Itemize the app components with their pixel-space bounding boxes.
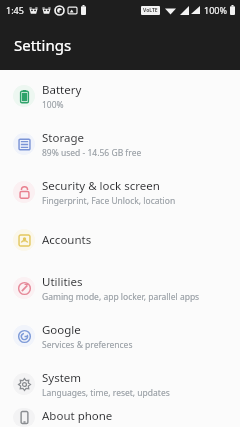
button[interactable]: Battery — [0, 72, 240, 120]
staticText: Gaming mode, app locker, parallel apps — [42, 291, 200, 303]
button[interactable]: System — [0, 360, 240, 408]
staticText: Languages, time, reset, updates — [42, 387, 170, 399]
staticText: Accounts — [42, 232, 92, 248]
staticText: About phone — [42, 408, 113, 424]
button[interactable]: About phone — [0, 408, 240, 427]
button[interactable]: Utilities — [0, 264, 240, 312]
button[interactable]: Google — [0, 312, 240, 360]
staticText: 100% — [204, 4, 227, 16]
staticText: Battery — [42, 82, 82, 98]
button[interactable]: Storage — [0, 120, 240, 168]
staticText: Fingerprint, Face Unlock, location — [42, 195, 176, 207]
staticText: Security & lock screen — [42, 178, 160, 194]
staticText: Utilities — [42, 274, 83, 290]
staticText: Google — [42, 322, 81, 338]
staticText: 100% — [42, 99, 64, 111]
button[interactable]: Security & lock screen — [0, 168, 240, 216]
staticText: System — [42, 370, 82, 386]
staticText: 1:45 — [6, 4, 24, 16]
staticText: Settings — [14, 35, 72, 55]
staticText: VoLTE — [143, 7, 158, 14]
staticText: 89% used - 14.56 GB free — [42, 147, 142, 159]
button[interactable]: Accounts — [0, 216, 240, 264]
staticText: Storage — [42, 130, 84, 146]
staticText: Services & preferences — [42, 339, 133, 351]
